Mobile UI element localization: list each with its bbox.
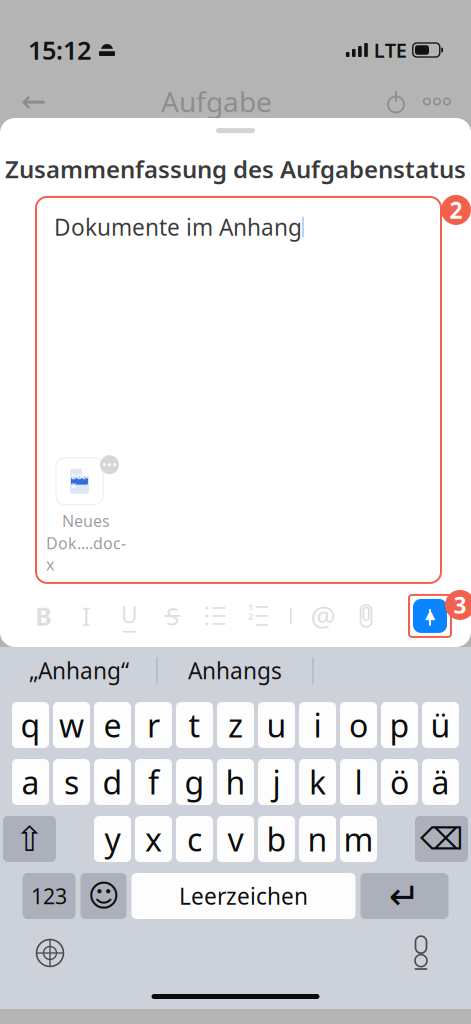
staticText: 2 [248,610,253,622]
button[interactable]: ä [422,759,459,805]
button[interactable]: Senden [409,595,451,637]
staticText: s [64,761,79,803]
button[interactable]: Priorität [377,85,415,118]
button[interactable]: q [12,702,49,748]
staticText [249,619,251,631]
button[interactable]: i [299,702,336,748]
button[interactable]: a [12,759,49,805]
staticText: S [166,600,179,632]
staticText: 1 [248,601,253,613]
staticText: Anhangs [188,655,282,685]
staticText: c [187,818,202,860]
staticText: l [354,761,362,803]
staticText: Zusammenfassung des Aufgabenstatus [5,153,466,185]
staticText: @ [311,597,336,634]
staticText: t [188,704,200,746]
staticText: ▲ [425,606,435,621]
staticText: e [103,704,121,746]
staticText: b [266,818,286,860]
button[interactable]: v [217,816,254,862]
staticText: u [266,704,286,746]
button[interactable]: „Anhang“ [1,647,156,694]
button[interactable]: s [53,759,90,805]
staticText: w [59,704,84,746]
button[interactable]: r [135,702,172,748]
staticText: 3 [453,590,466,620]
button[interactable]: Unterstrichen [108,595,151,637]
button[interactable]: e [94,702,131,748]
button[interactable]: l [340,759,377,805]
button[interactable]: Eingabetaste [360,873,448,919]
button[interactable]: ü [422,702,459,748]
staticText: Dok....docx [46,532,126,575]
staticText: 123 [31,882,67,910]
button[interactable]: 123 [22,873,75,919]
staticText: d [102,761,122,803]
staticText: y [104,818,120,860]
staticText: ⇧ [15,819,44,859]
button[interactable]: p [381,702,418,748]
button[interactable]: Anhangs [157,647,312,694]
button[interactable]: d [94,759,131,805]
button[interactable]: z [217,702,254,748]
staticText: Neues [62,510,110,531]
staticText: v [227,818,243,860]
button[interactable]: w [53,702,90,748]
button[interactable]: m [340,816,377,862]
button[interactable]: j [258,759,295,805]
button[interactable]: Zurück [12,85,56,118]
staticText: j [272,761,280,803]
button[interactable]: t [176,702,213,748]
staticText: p [389,704,409,746]
staticText: ä [431,761,449,803]
button[interactable]: Anhang Neues Dokument docx [46,455,126,575]
staticText: m [343,818,373,860]
button[interactable]: g [176,759,213,805]
staticText: „Anhang“ [29,655,129,685]
button[interactable]: Umschalttaste [3,816,56,862]
button[interactable]: Datei anhängen [345,595,388,637]
button[interactable]: c [176,816,213,862]
button[interactable]: y [94,816,131,862]
staticText: ↵ [389,875,420,917]
staticText: ← [21,84,47,119]
button[interactable]: f [135,759,172,805]
button[interactable]: Weitere Optionen [415,85,459,118]
staticText: I [82,599,91,633]
button[interactable]: u [258,702,295,748]
staticText: LTE [374,37,407,63]
staticText: a [21,761,39,803]
button[interactable]: Aufzählung [194,595,237,637]
button[interactable]: Löschen [415,816,468,862]
staticText: i [313,704,321,746]
staticText: g [184,761,204,803]
button[interactable]: Emoji [80,873,126,919]
button[interactable]: Durchgestrichen [151,595,194,637]
button[interactable]: Kursiv [65,595,108,637]
button[interactable]: x [135,816,172,862]
staticText: DOCX [71,472,87,490]
button[interactable]: Fett [22,595,65,637]
staticText: ⌫ [420,822,463,856]
button[interactable]: b [258,816,295,862]
staticText: n [307,818,327,860]
staticText: k [309,761,326,803]
staticText: f [148,761,159,803]
button[interactable]: Leerzeichen [131,873,355,919]
staticText: B [35,599,52,633]
staticText: ö [390,761,409,803]
button[interactable]: Nummerierte Liste [237,595,280,637]
button[interactable]: k [299,759,336,805]
button[interactable]: Tastatur wechseln [27,933,73,973]
staticText: Dokumente im Anhang [54,212,302,242]
button[interactable]: Diktat [398,933,444,973]
staticText: U [121,599,138,629]
button[interactable]: o [340,702,377,748]
button[interactable]: h [217,759,254,805]
button[interactable]: n [299,816,336,862]
button[interactable]: ö [381,759,418,805]
button[interactable]: Erwähnen [302,595,345,637]
staticText: o [349,704,368,746]
staticText: x [145,818,162,860]
